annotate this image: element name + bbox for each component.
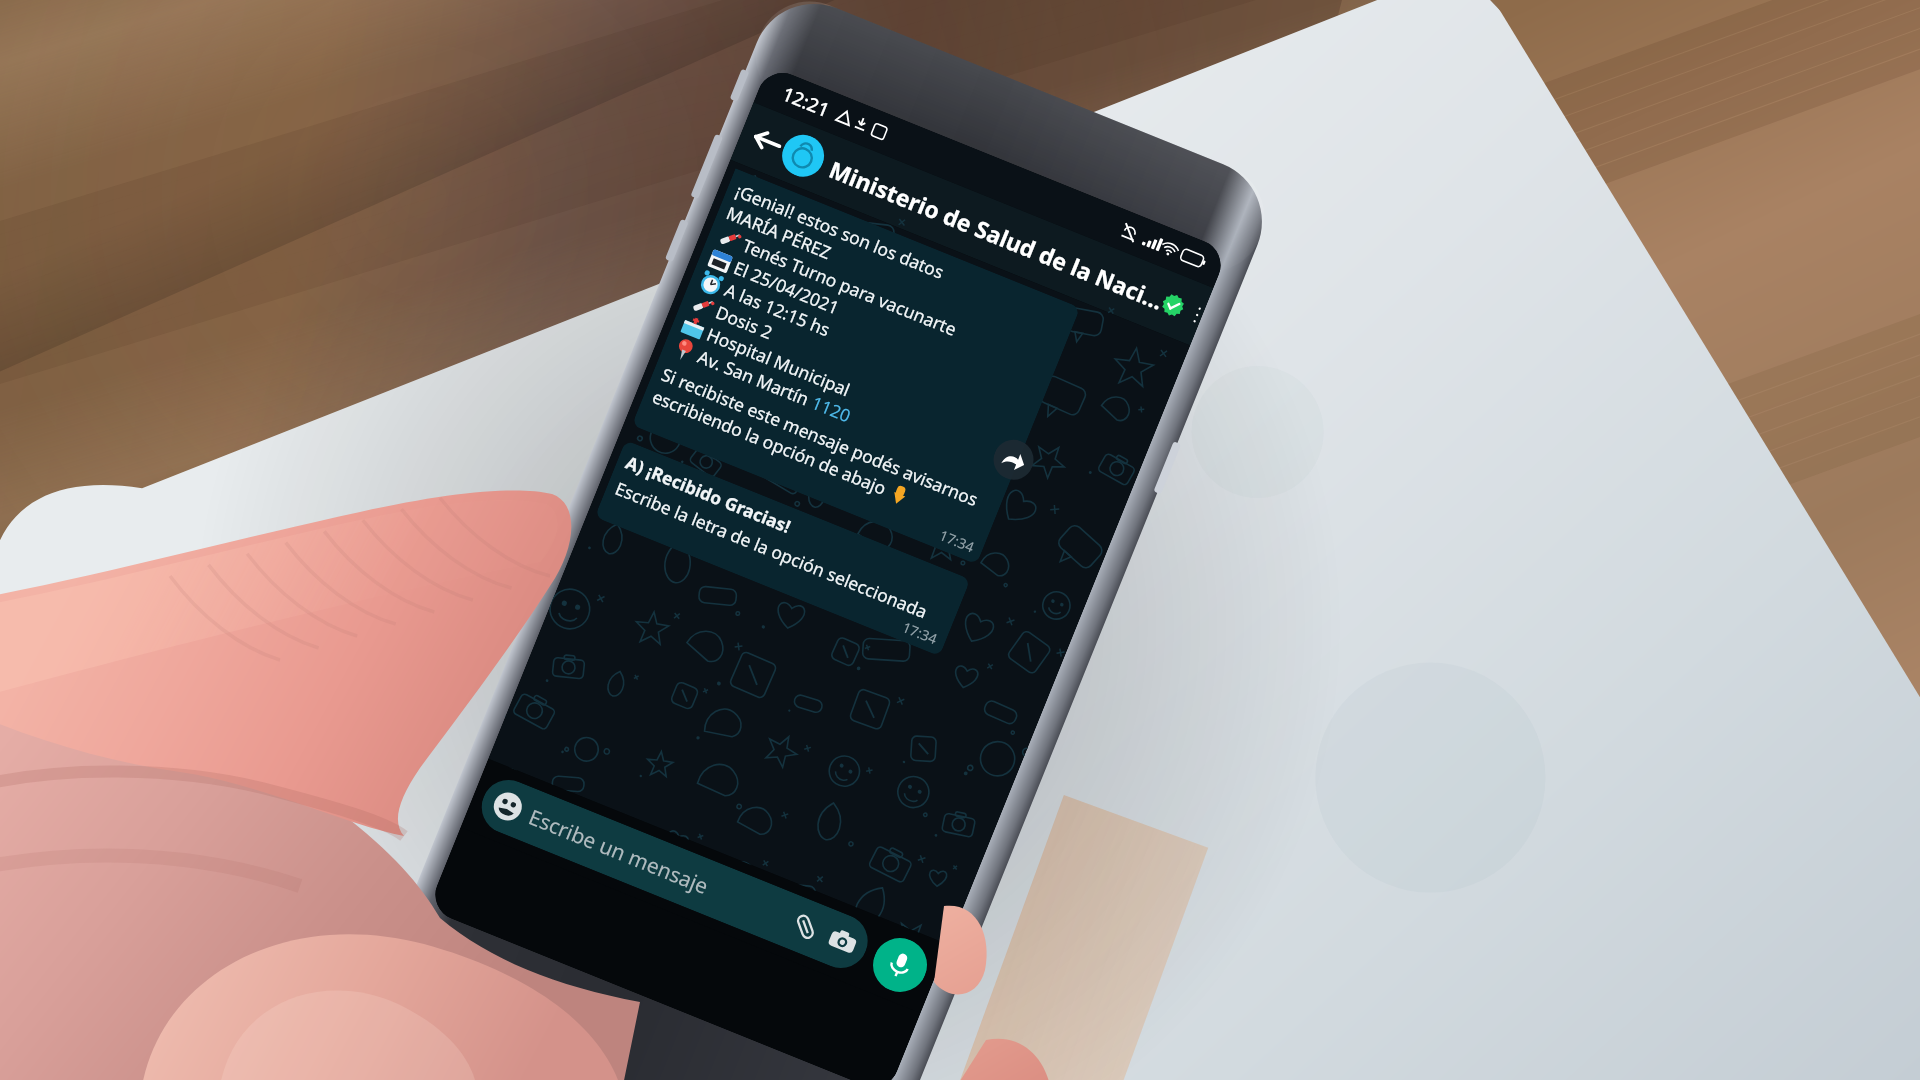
staticText: 1120 xyxy=(808,390,855,428)
button[interactable]: ¡Genial! estos son los datos xyxy=(632,168,1080,565)
button[interactable]: Emoji xyxy=(490,788,526,825)
staticText: ¡Genial! estos son los datos xyxy=(732,178,948,284)
staticText: Hospital Municipal xyxy=(703,322,854,401)
staticText: Av. San Martín xyxy=(694,344,817,412)
staticText: Dosis 2 xyxy=(712,300,777,344)
button[interactable]: Emoji xyxy=(474,772,876,976)
staticText: 17:34 xyxy=(900,617,940,648)
button[interactable]: Back xyxy=(730,102,1213,346)
button[interactable]: A) ¡Recibido Gracias! xyxy=(595,440,971,656)
staticText: Tenés Turno para vacunarte xyxy=(739,233,960,341)
other: Verified business account xyxy=(1159,291,1187,319)
button[interactable]: Back xyxy=(747,122,786,161)
button[interactable]: Record voice message xyxy=(865,930,935,1000)
button[interactable]: Attach xyxy=(788,910,822,944)
button[interactable]: More options xyxy=(1188,301,1207,329)
staticText: 17:34 xyxy=(937,525,977,556)
staticText: 12:21 xyxy=(778,81,834,123)
staticText: escribiendo la opción de abajo xyxy=(649,384,894,502)
staticText: Si recibiste este mensaje podés avisarno… xyxy=(658,362,982,511)
staticText: MARÍA PÉREZ xyxy=(723,200,835,264)
button[interactable]: Forward message xyxy=(987,434,1040,486)
button[interactable]: Camera xyxy=(826,925,859,959)
staticText: A) ¡Recibido Gracias! xyxy=(622,450,795,538)
staticText: El 25/04/2021 xyxy=(730,255,843,319)
staticText: A las 12:15 hs xyxy=(721,277,834,341)
staticText: Escribe la letra de la opción selecciona… xyxy=(612,476,931,623)
staticText: Escribe un mensaje xyxy=(524,803,713,901)
staticText: Ministerio de Salud de la Naci... xyxy=(825,153,1168,316)
